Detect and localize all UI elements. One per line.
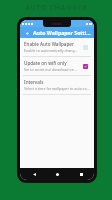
- button[interactable]: Checked: [81, 62, 90, 71]
- button[interactable]: Recents: [71, 168, 91, 180]
- staticText: Update on wifi only: [24, 60, 67, 66]
- button[interactable]: Enable Auto Wallpaper: [20, 38, 94, 56]
- staticText: AUTO CHANGER: [25, 3, 88, 13]
- button[interactable]: Unchecked: [81, 43, 90, 52]
- button[interactable]: Intervals: [20, 76, 94, 94]
- staticText: Auto Wallpaper Settings: [33, 29, 91, 36]
- staticText: Set to count out download on a wifi netw…: [24, 67, 78, 72]
- button[interactable]: Update on wifi only: [20, 57, 94, 75]
- button[interactable]: Home: [47, 168, 67, 180]
- staticText: Enable Auto Wallpaper: [24, 41, 74, 47]
- button[interactable]: Back: [24, 168, 44, 180]
- staticText: Select a time for wallpaper to auto-rota…: [24, 86, 90, 91]
- button[interactable]: Back: [23, 29, 31, 37]
- staticText: Enable to automatically change the wallp…: [24, 48, 78, 53]
- staticText: Intervals: [24, 79, 44, 85]
